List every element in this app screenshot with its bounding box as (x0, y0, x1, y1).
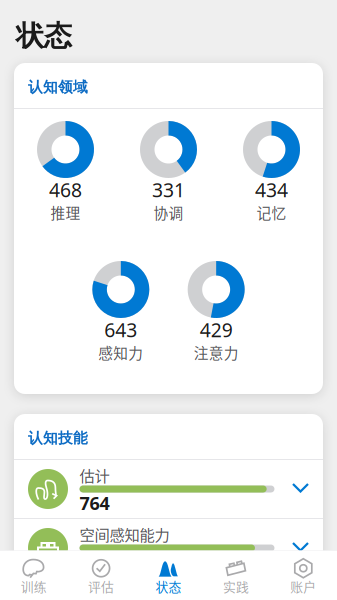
staticText: 712 (79, 550, 109, 574)
button[interactable]: 评估 (67, 553, 135, 597)
staticText: 空间感知能力 (79, 523, 169, 545)
staticText: 实践 (223, 577, 249, 595)
staticText: 429 (200, 317, 233, 343)
staticText: 状态 (16, 18, 72, 54)
staticText: 764 (79, 491, 109, 515)
button[interactable]: 空间感知能力 (14, 519, 323, 577)
staticText: 训练 (21, 577, 47, 595)
staticText: 331 (152, 177, 185, 203)
staticText: 状态 (155, 577, 181, 595)
button[interactable]: 实践 (202, 553, 270, 597)
button[interactable]: 账户 (270, 553, 337, 597)
button[interactable]: 状态 (135, 553, 202, 597)
staticText: 协调 (153, 202, 183, 223)
staticText: 注意力 (194, 342, 239, 363)
staticText: 账户 (290, 577, 316, 595)
staticText: 感知力 (98, 342, 143, 363)
staticText: 643 (104, 317, 137, 343)
staticText: 认知领域 (28, 78, 88, 96)
staticText: 估计 (79, 464, 109, 486)
staticText: 评估 (88, 577, 114, 595)
staticText: 434 (255, 177, 288, 203)
staticText: 468 (49, 177, 82, 203)
staticText: 推理 (50, 202, 80, 223)
staticText: 认知技能 (28, 429, 88, 447)
staticText: 记忆 (256, 202, 286, 223)
button[interactable]: 估计 (14, 460, 323, 518)
button[interactable]: 训练 (0, 553, 67, 597)
